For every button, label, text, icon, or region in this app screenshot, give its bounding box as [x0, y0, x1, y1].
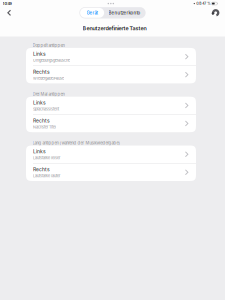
button[interactable]: Zurück [3, 7, 16, 18]
staticText: Lang antippen (während der Musikwiederga… [32, 140, 120, 145]
button[interactable]: Links [26, 97, 196, 114]
staticText: Links [33, 148, 46, 154]
button[interactable]: Geräteinformationen [209, 7, 222, 18]
button[interactable]: Links [26, 145, 196, 163]
staticText: Rechts [33, 166, 50, 172]
staticText: Rechts [33, 69, 50, 75]
staticText: Gerät [87, 10, 98, 15]
button[interactable]: Rechts [26, 163, 196, 181]
staticText: 10:49 [2, 1, 11, 6]
button[interactable]: Benutzerkonto [104, 8, 145, 18]
staticText: GB 47 % [196, 1, 210, 6]
staticText: Benutzerkonto [108, 10, 140, 15]
button[interactable]: Rechts [26, 115, 196, 132]
staticText: Lautstärke lauter [33, 174, 60, 178]
staticText: Rechts [33, 117, 50, 124]
staticText: Benutzerdefinierte Tasten [82, 25, 146, 31]
staticText: Sprachassistent [33, 107, 59, 111]
staticText: Wiedergabe/Pause [33, 76, 64, 81]
staticText: Lautstärke leiser [33, 156, 60, 160]
button[interactable]: Gerät [80, 8, 104, 18]
staticText: Nächster Titel [33, 125, 56, 129]
staticText: Drei Mal antippen [32, 92, 64, 97]
button[interactable]: Links [26, 48, 196, 65]
staticText: Links [33, 51, 46, 57]
staticText: Doppelt antippen [32, 43, 64, 48]
staticText: Umgebungsgeräusche [33, 58, 70, 63]
button[interactable]: Rechts [26, 66, 196, 83]
staticText: Links [33, 99, 46, 106]
